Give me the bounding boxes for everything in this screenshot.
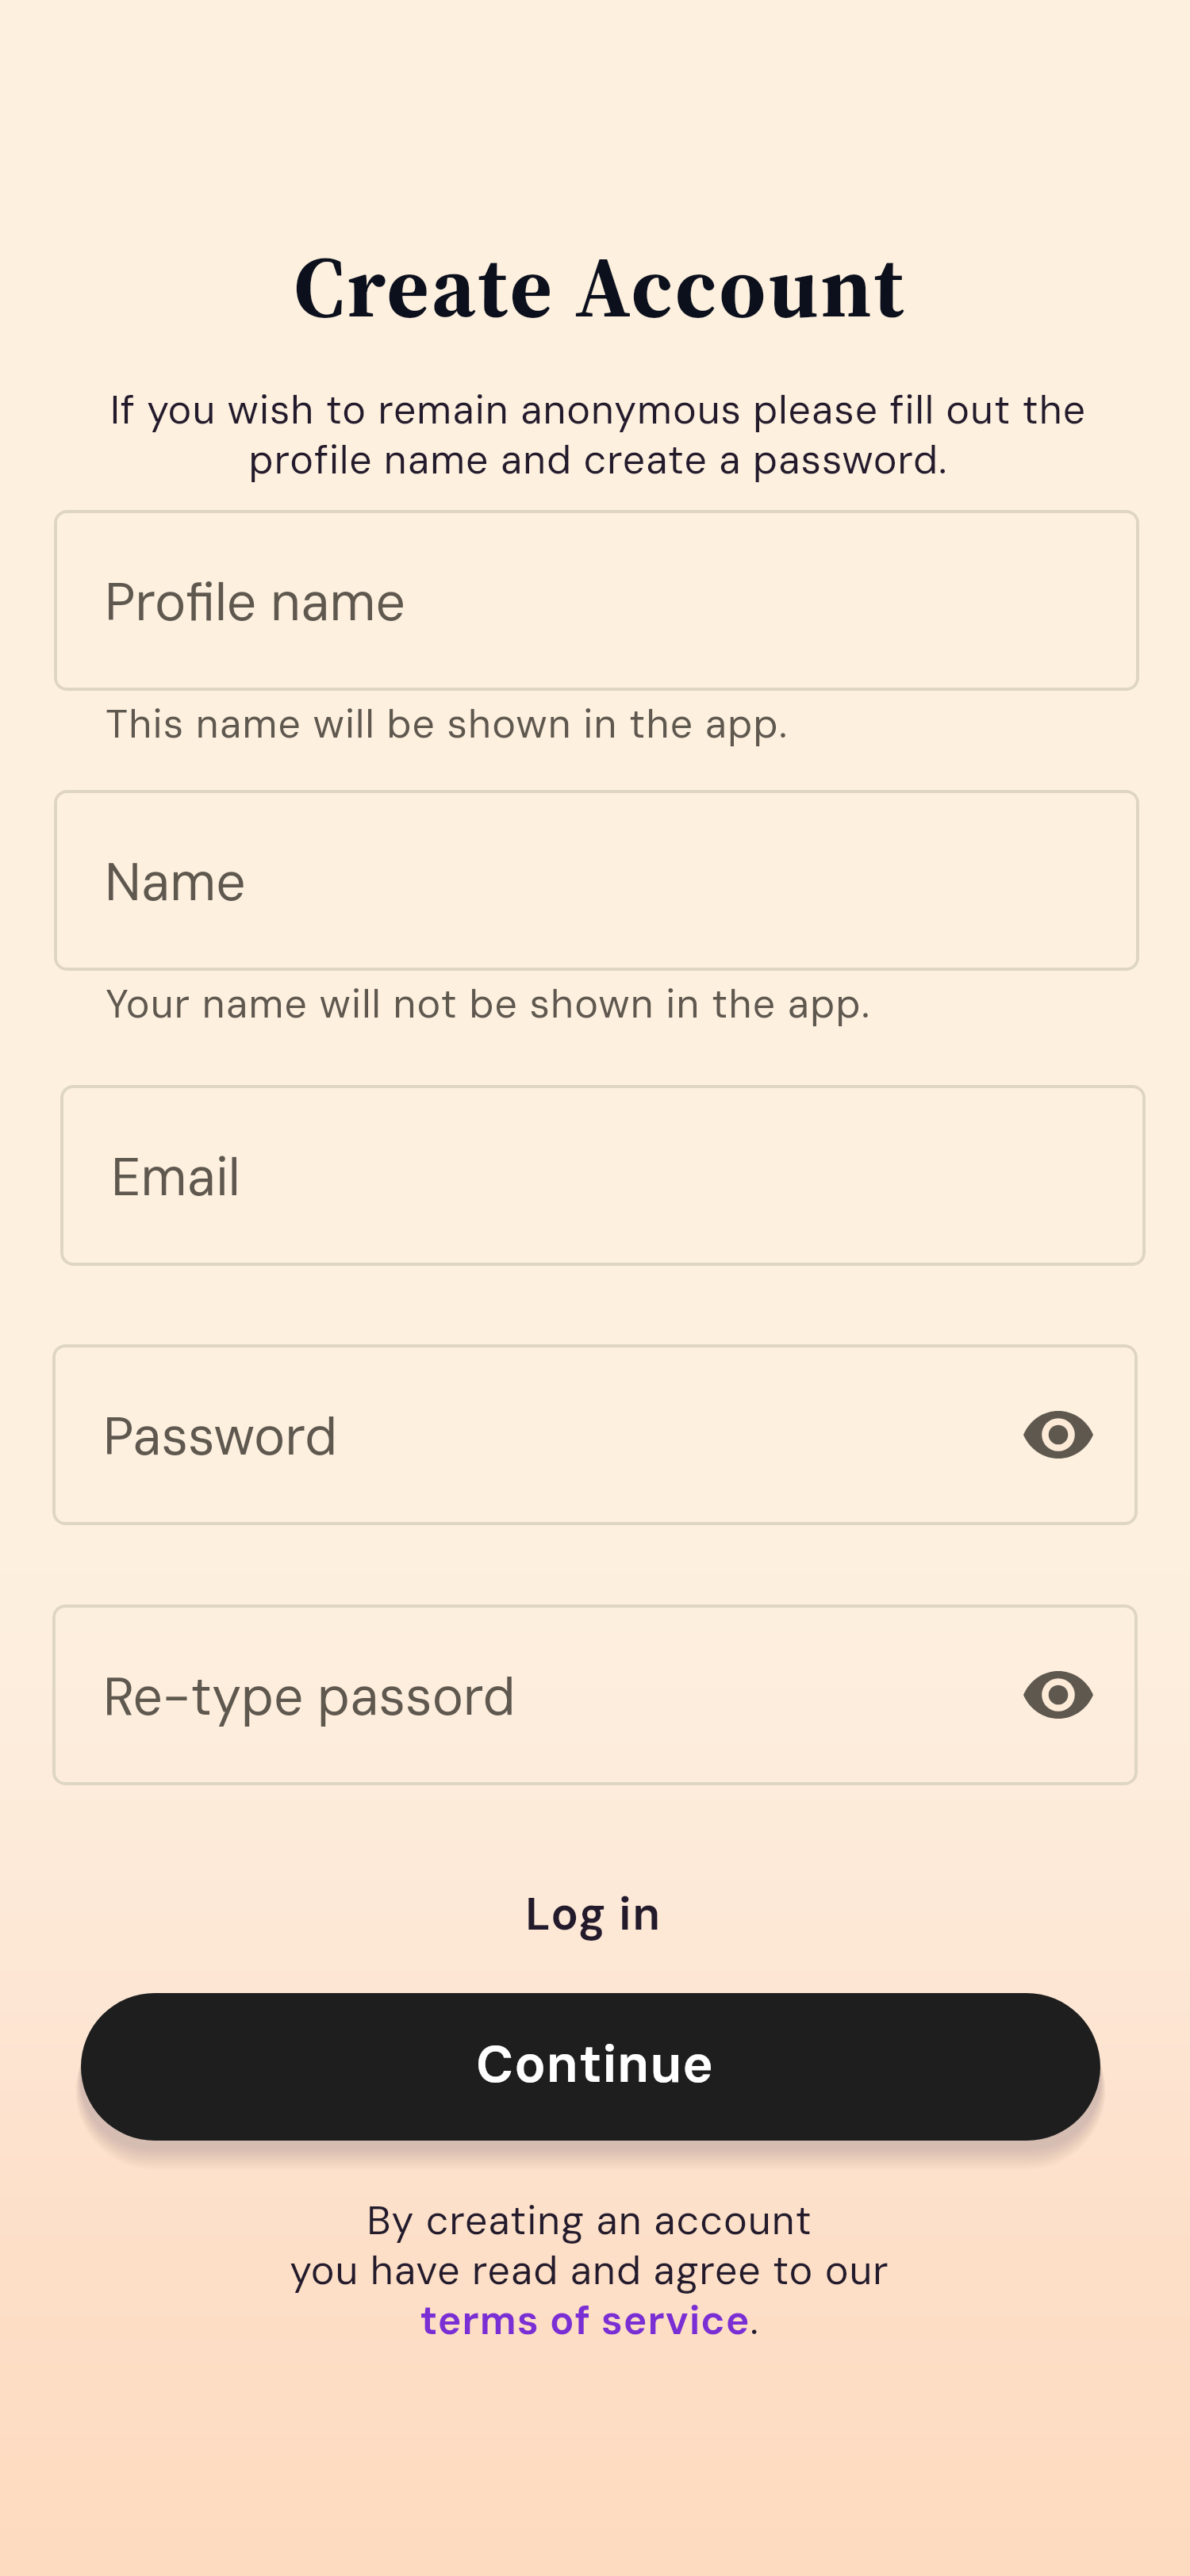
staticText: This name will be shown in the app. xyxy=(106,698,789,749)
staticText: Create Account xyxy=(5,227,1190,345)
staticText: Continue xyxy=(476,2031,714,2099)
button[interactable]: Email xyxy=(60,1085,1146,1266)
button[interactable]: Continue xyxy=(81,1993,1100,2141)
button[interactable]: Re-type passord xyxy=(52,1604,1138,1785)
button[interactable]: Log in xyxy=(497,1875,691,1953)
staticText: If you wish to remain anonymous please f… xyxy=(3,384,1190,486)
staticText: Name xyxy=(105,849,1095,917)
staticText: Profile name xyxy=(105,569,1095,637)
staticText: Your name will not be shown in the app. xyxy=(106,978,871,1029)
staticText: Re-type passord xyxy=(103,1663,1023,1731)
staticText: Log in xyxy=(525,1884,662,1943)
other: Show password xyxy=(1023,1671,1093,1719)
staticText: By creating an account you have read and… xyxy=(0,2195,1184,2347)
staticText: Password xyxy=(103,1403,1023,1471)
other: Show password xyxy=(1023,1411,1093,1459)
button[interactable]: Password xyxy=(52,1344,1138,1525)
button[interactable]: Name xyxy=(54,790,1139,971)
staticText: Email xyxy=(111,1144,1101,1212)
button[interactable]: Profile name xyxy=(54,510,1139,691)
